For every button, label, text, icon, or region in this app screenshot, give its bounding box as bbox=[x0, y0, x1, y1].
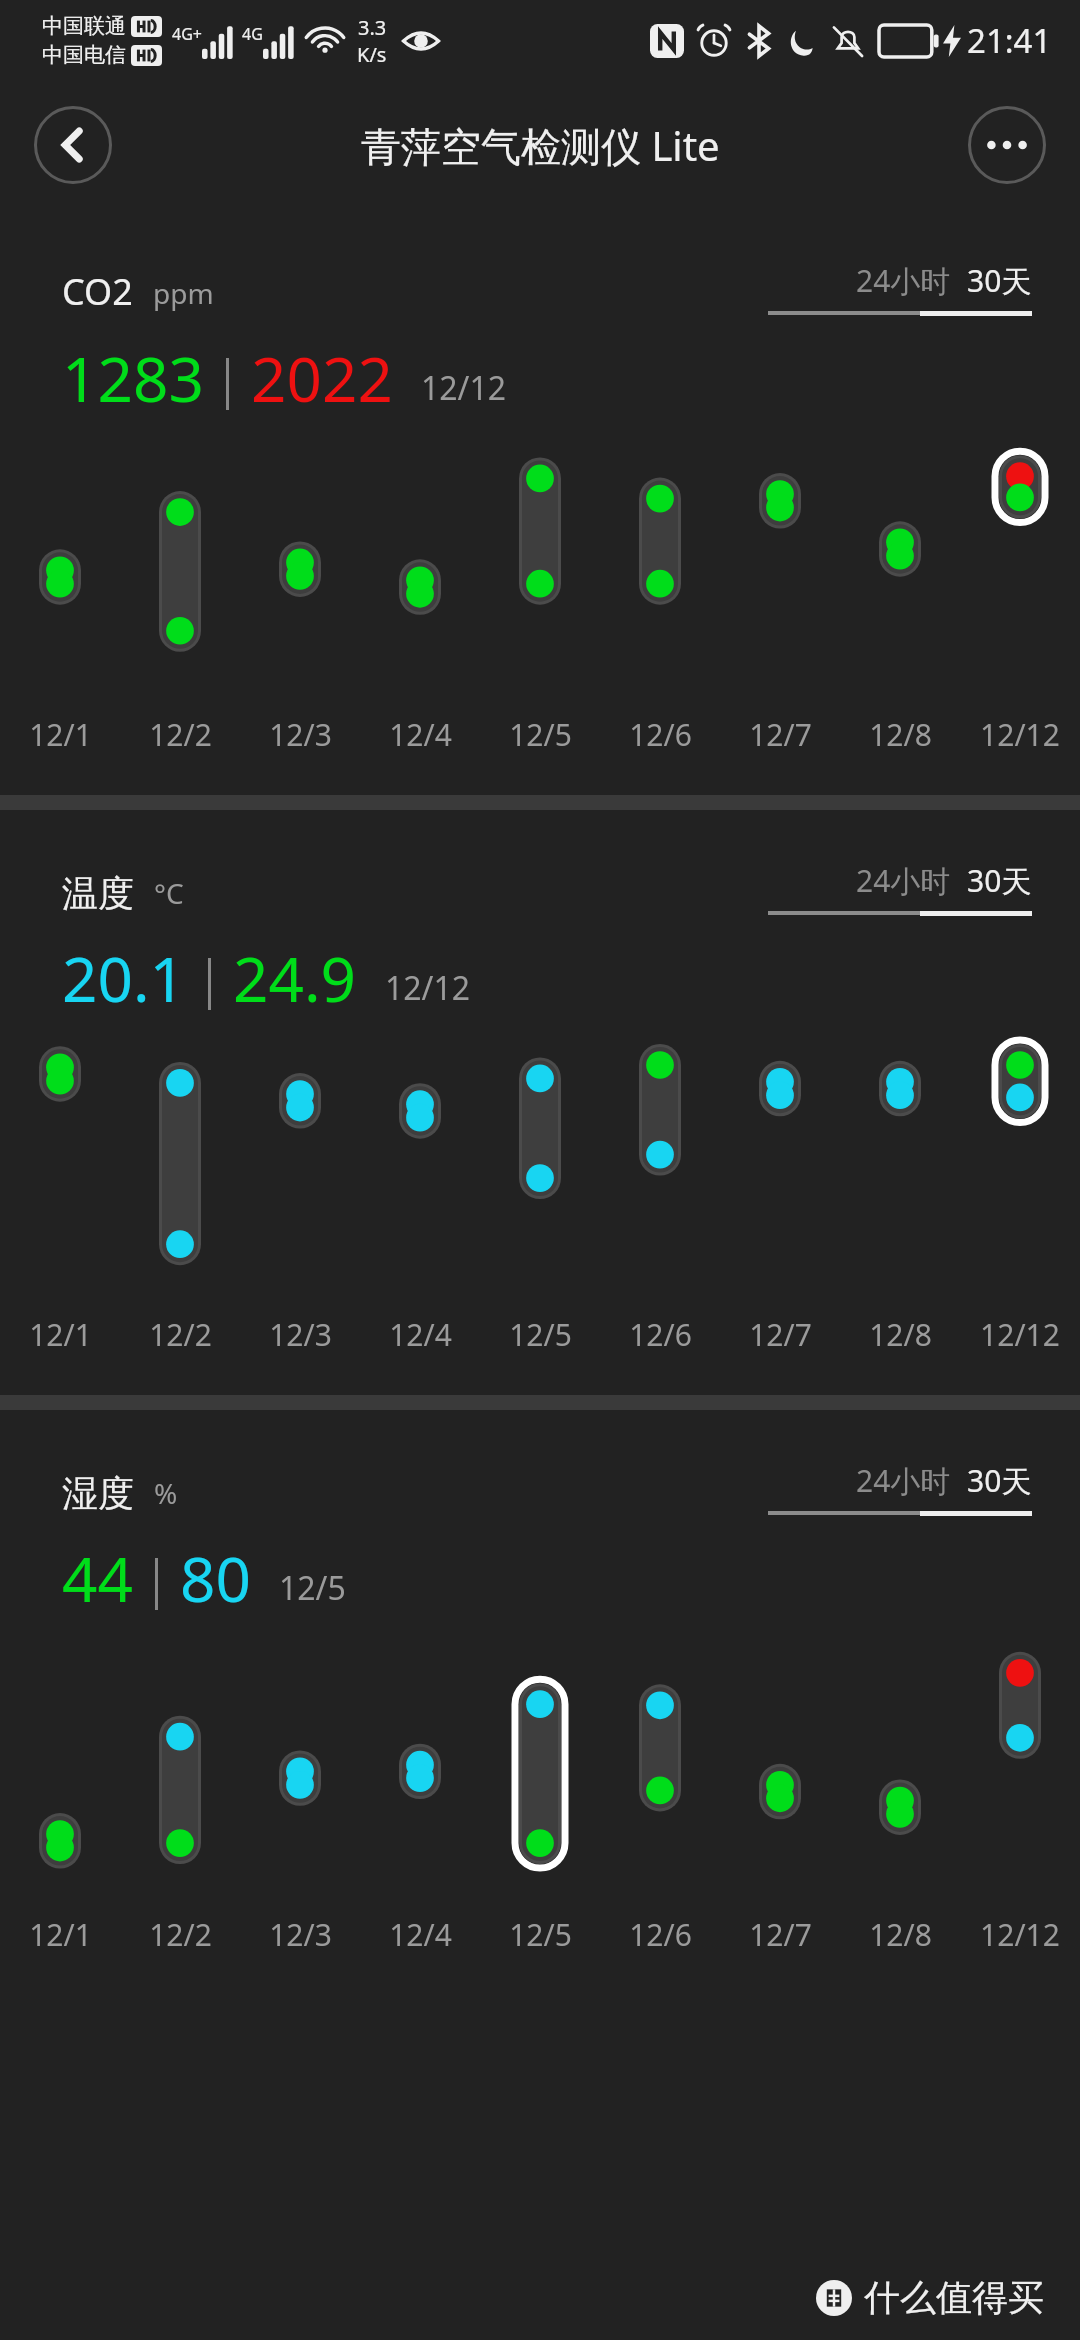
staticText: 12/4 bbox=[389, 714, 452, 755]
staticText: 3.3 bbox=[358, 14, 387, 41]
staticText: 12/7 bbox=[749, 1914, 812, 1955]
staticText: 12/2 bbox=[149, 714, 212, 755]
staticText: 12/4 bbox=[389, 1914, 452, 1955]
staticText: 12/7 bbox=[749, 1314, 812, 1355]
staticText: 12/5 bbox=[509, 714, 572, 755]
staticText: 12/2 bbox=[149, 1314, 212, 1355]
staticText: 12/8 bbox=[869, 714, 932, 755]
staticText: 24小时 bbox=[856, 1460, 951, 1501]
staticText: 12/12 bbox=[385, 966, 471, 1010]
staticText: °C bbox=[154, 874, 184, 912]
staticText: 12/3 bbox=[269, 1914, 332, 1955]
staticText: 12/1 bbox=[29, 714, 92, 755]
staticText: 12/1 bbox=[29, 1914, 92, 1955]
button[interactable]: 30天 bbox=[967, 1460, 1032, 1501]
staticText: % bbox=[154, 1474, 178, 1512]
staticText: 12/8 bbox=[869, 1914, 932, 1955]
staticText: K/s bbox=[357, 41, 387, 68]
staticText: 12/1 bbox=[29, 1314, 92, 1355]
button[interactable]: 24小时 bbox=[856, 860, 951, 901]
staticText: 20.1 bbox=[62, 936, 186, 1020]
staticText: 30天 bbox=[967, 860, 1032, 901]
staticText: 21:41 bbox=[967, 18, 1052, 63]
staticText: 12/5 bbox=[509, 1314, 572, 1355]
staticText: 12/12 bbox=[980, 1314, 1060, 1355]
staticText: 24小时 bbox=[856, 260, 951, 301]
staticText: 12/6 bbox=[629, 714, 692, 755]
staticText: 44 bbox=[62, 1536, 133, 1620]
staticText: 12/12 bbox=[980, 1914, 1060, 1955]
staticText: 12/2 bbox=[149, 1914, 212, 1955]
staticText: 温度 bbox=[62, 871, 134, 916]
button[interactable]: 24小时 bbox=[856, 260, 951, 301]
staticText: 中国联通 bbox=[42, 13, 126, 39]
staticText: 24小时 bbox=[856, 860, 951, 901]
button[interactable]: 30天 bbox=[967, 260, 1032, 301]
staticText: 12/3 bbox=[269, 1314, 332, 1355]
staticText: 80 bbox=[180, 1536, 251, 1620]
button[interactable]: More options bbox=[968, 106, 1046, 184]
staticText: 什么值得买 bbox=[864, 2275, 1044, 2320]
staticText: 12/5 bbox=[279, 1566, 346, 1610]
staticText: 12/6 bbox=[629, 1914, 692, 1955]
staticText: 4G+ bbox=[172, 23, 202, 45]
staticText: 湿度 bbox=[62, 1471, 134, 1516]
staticText: 12/8 bbox=[869, 1314, 932, 1355]
staticText: 12/4 bbox=[389, 1314, 452, 1355]
staticText: 12/7 bbox=[749, 714, 812, 755]
staticText: 2022 bbox=[251, 336, 393, 420]
staticText: 1283 bbox=[62, 336, 204, 420]
staticText: 12/12 bbox=[980, 714, 1060, 755]
staticText: 12/12 bbox=[421, 366, 507, 410]
staticText: 青萍空气检测仪 Lite bbox=[361, 118, 720, 173]
staticText: 4G bbox=[242, 23, 263, 45]
staticText: 24.9 bbox=[233, 936, 357, 1020]
staticText: 中国电信 bbox=[42, 42, 126, 68]
staticText: CO2 bbox=[62, 267, 133, 316]
staticText: 30天 bbox=[967, 260, 1032, 301]
button[interactable]: 24小时 bbox=[856, 1460, 951, 1501]
staticText: 12/6 bbox=[629, 1314, 692, 1355]
staticText: 30天 bbox=[967, 1460, 1032, 1501]
button[interactable]: 30天 bbox=[967, 860, 1032, 901]
button[interactable]: Back bbox=[34, 106, 112, 184]
staticText: 12/5 bbox=[509, 1914, 572, 1955]
staticText: ppm bbox=[153, 274, 214, 312]
staticText: 12/3 bbox=[269, 714, 332, 755]
